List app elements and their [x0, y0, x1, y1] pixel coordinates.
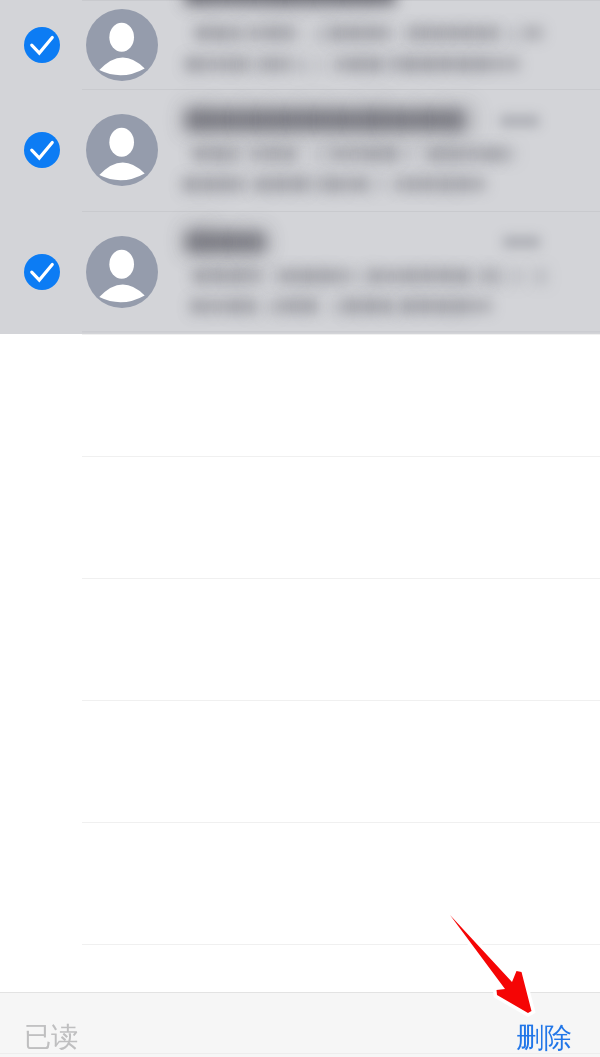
button[interactable]	[0, 822, 600, 944]
button[interactable]: Selected	[0, 0, 600, 89]
button[interactable]: 已读	[0, 1008, 516, 1057]
other: Delete hint arrow	[0, 0, 600, 1057]
other: Selected	[24, 27, 60, 63]
button[interactable]: Selected	[0, 211, 600, 333]
staticText: 删除	[516, 1020, 572, 1055]
button[interactable]: Selected	[0, 89, 600, 211]
button[interactable]	[0, 944, 600, 1057]
staticText: 已读	[24, 1020, 78, 1054]
other: Selected	[24, 132, 60, 168]
button[interactable]: 删除	[516, 1008, 600, 1057]
other: Selected	[24, 254, 60, 290]
